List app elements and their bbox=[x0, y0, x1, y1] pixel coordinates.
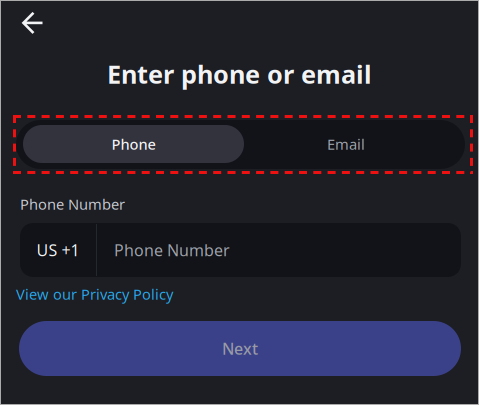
button[interactable]: Phone Number bbox=[114, 223, 459, 277]
staticText: US +1 bbox=[36, 239, 79, 261]
staticText: Enter phone or email bbox=[107, 57, 372, 91]
button[interactable]: Back bbox=[11, 3, 55, 43]
staticText: Email bbox=[327, 134, 365, 154]
staticText: Next bbox=[222, 338, 258, 359]
staticText: Phone Number bbox=[114, 239, 230, 261]
button[interactable]: Next bbox=[19, 321, 461, 376]
staticText: View our Privacy Policy bbox=[16, 284, 173, 304]
staticText: Phone Number bbox=[20, 194, 125, 214]
staticText: Phone bbox=[111, 134, 155, 154]
button[interactable]: View our Privacy Policy bbox=[16, 285, 206, 303]
button[interactable]: Email bbox=[246, 125, 446, 163]
button[interactable]: US +1 bbox=[20, 223, 96, 277]
button[interactable]: Phone bbox=[23, 125, 244, 163]
